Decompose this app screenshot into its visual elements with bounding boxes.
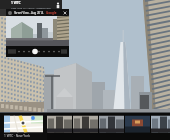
staticText: 1 WTC (11, 1, 21, 5)
staticText: Google (46, 11, 57, 15)
other: Street View pegman (55, 2, 61, 8)
button[interactable]: Close (63, 11, 67, 15)
staticText: 1 WTC · New York (4, 134, 30, 138)
staticText: New York, NY 10013 · onewtc.com (11, 6, 51, 9)
staticText: Street View - Aug 2014 (14, 11, 44, 15)
button[interactable]: 1 WTC (0, 0, 62, 9)
button[interactable]: Map (0, 113, 47, 140)
